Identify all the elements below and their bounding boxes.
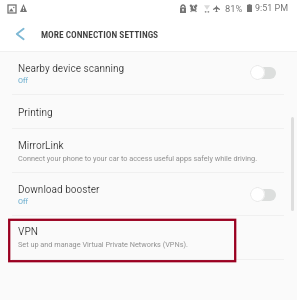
button[interactable]: Navigate up bbox=[8, 22, 32, 46]
staticText: 81% bbox=[225, 3, 243, 14]
staticText: Printing bbox=[18, 107, 53, 119]
button[interactable]: Toggle, off bbox=[250, 187, 276, 202]
staticText: Connect your phone to your car to access… bbox=[18, 154, 258, 163]
button[interactable]: Toggle, off bbox=[250, 65, 276, 80]
button[interactable] bbox=[0, 51, 297, 94]
button[interactable] bbox=[0, 173, 297, 215]
staticText: Off bbox=[18, 197, 29, 206]
staticText: Nearby device scanning bbox=[18, 63, 125, 75]
staticText: 9:51 PM bbox=[255, 3, 289, 14]
staticText: MirrorLink bbox=[18, 140, 64, 152]
staticText: Download booster bbox=[18, 184, 100, 196]
staticText: Set up and manage Virtual Private Networ… bbox=[18, 240, 188, 249]
staticText: VPN bbox=[18, 226, 38, 238]
staticText: MORE CONNECTION SETTINGS bbox=[41, 29, 159, 40]
staticText: Off bbox=[18, 76, 29, 85]
button[interactable] bbox=[0, 216, 297, 261]
button[interactable] bbox=[0, 95, 297, 128]
button[interactable] bbox=[0, 129, 297, 172]
